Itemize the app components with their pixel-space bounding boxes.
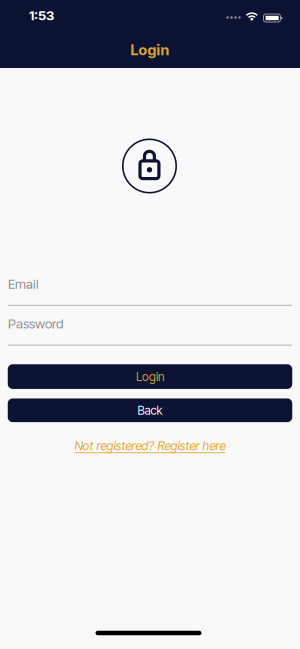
staticText: Login (130, 41, 169, 59)
button[interactable]: Email (8, 276, 292, 306)
staticText: Email (8, 276, 39, 292)
button[interactable]: Login (8, 364, 292, 389)
staticText: Not registered? Register here (74, 439, 225, 453)
staticText: Back (137, 403, 162, 417)
button[interactable]: Password (8, 316, 292, 346)
staticText: Login (136, 369, 164, 384)
staticText: Password (8, 316, 63, 331)
button[interactable]: Not registered? Register here (74, 439, 225, 453)
staticText: 1:53 (29, 8, 54, 23)
button[interactable]: Back (8, 398, 292, 422)
